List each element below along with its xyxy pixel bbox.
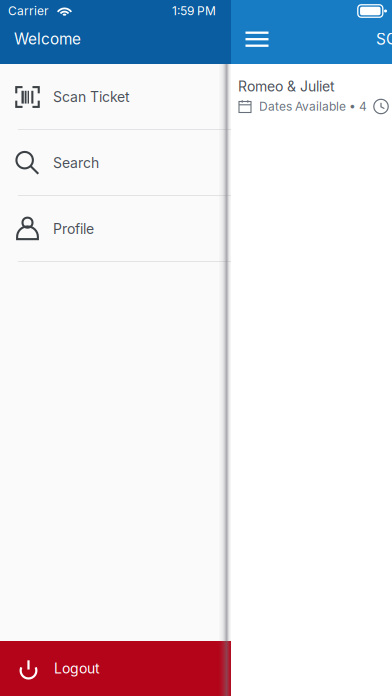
staticText: Carrier bbox=[8, 4, 49, 18]
button[interactable]: Search bbox=[0, 130, 231, 196]
staticText: 1:59 PM bbox=[172, 4, 216, 18]
button[interactable]: Profile bbox=[0, 196, 231, 262]
staticText: Search bbox=[53, 154, 99, 171]
staticText: Welcome bbox=[14, 30, 81, 48]
staticText: Logout bbox=[54, 660, 100, 677]
staticText: Dates Available • 4 bbox=[259, 99, 367, 114]
button[interactable]: Open menu bbox=[237, 22, 277, 56]
staticText: Profile bbox=[53, 220, 94, 237]
button[interactable]: Logout bbox=[0, 641, 231, 696]
staticText: Romeo & Juliet bbox=[238, 78, 335, 95]
staticText: SCAN TICKET bbox=[376, 30, 392, 48]
button[interactable]: Scan Ticket bbox=[0, 64, 231, 130]
staticText: Scan Ticket bbox=[53, 88, 130, 105]
